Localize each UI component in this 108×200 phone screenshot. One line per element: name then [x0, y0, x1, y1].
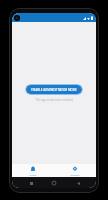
staticText: ENABLE ADMINISTRATOR MODE	[31, 88, 77, 92]
button[interactable]: ENABLE ADMINISTRATOR MODE	[26, 85, 82, 94]
button[interactable]: Home	[49, 178, 59, 188]
button[interactable]: Settings	[54, 164, 96, 177]
staticText: Settings	[70, 173, 80, 176]
staticText: Home	[29, 173, 37, 176]
staticText: This app needs to be enabled	[35, 98, 73, 102]
button[interactable]: Recents	[26, 178, 36, 188]
button[interactable]: Back	[73, 178, 83, 188]
button[interactable]: Home	[12, 164, 54, 177]
